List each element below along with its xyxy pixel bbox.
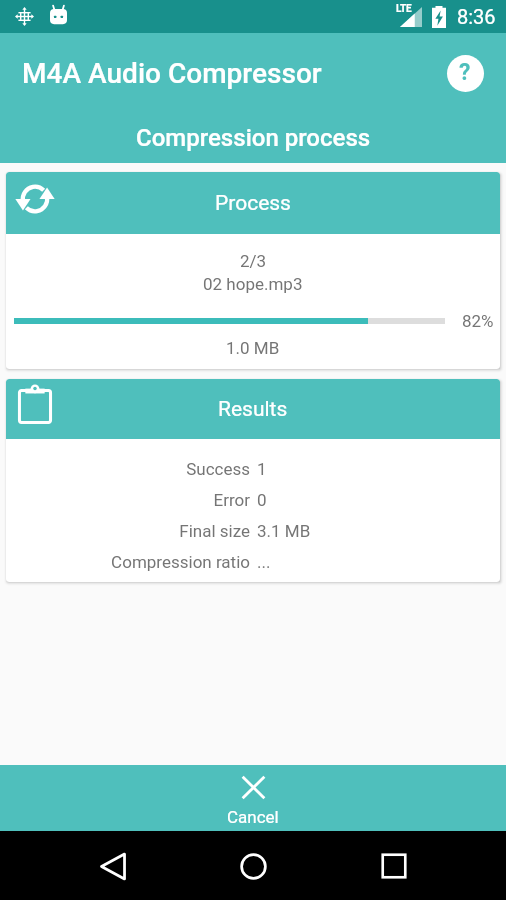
staticText: LTE	[396, 3, 412, 15]
staticText: 02 hope.mp3	[203, 274, 303, 294]
staticText: 2/3	[240, 251, 267, 271]
staticText: 82%	[462, 311, 494, 331]
staticText: ...	[257, 552, 271, 572]
staticText: Compression process	[136, 124, 371, 152]
staticText: Cancel	[227, 807, 279, 827]
staticText: ?	[459, 59, 471, 86]
staticText: M4A Audio Compressor	[22, 57, 322, 90]
staticText: Process	[215, 191, 291, 216]
staticText: 1.0 MB	[226, 338, 280, 358]
staticText: Results	[218, 397, 288, 422]
staticText: 1	[257, 459, 267, 479]
button[interactable]: Recent apps	[366, 838, 422, 894]
staticText: Error	[213, 490, 250, 510]
button[interactable]: Cancel	[0, 765, 506, 831]
staticText: Final size	[179, 521, 250, 541]
staticText: Success	[186, 459, 250, 479]
staticText: 3.1 MB	[257, 521, 311, 541]
staticText: 0	[257, 490, 267, 510]
staticText: Compression ratio	[111, 552, 250, 572]
button[interactable]: Home	[225, 838, 281, 894]
button[interactable]: Back	[85, 838, 141, 894]
staticText: 8:36	[457, 5, 496, 28]
button[interactable]: Help	[445, 53, 485, 93]
